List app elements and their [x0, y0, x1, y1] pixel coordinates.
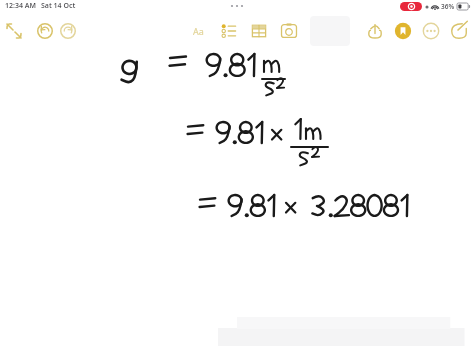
button[interactable]: Camera	[278, 20, 300, 42]
staticText: 12:34 AM	[5, 1, 36, 11]
button[interactable]: Compose	[448, 20, 470, 42]
button[interactable]: Collapse	[2, 19, 26, 43]
button[interactable]: Bullet list	[218, 20, 240, 42]
button[interactable]: Bookmark	[392, 20, 414, 42]
button[interactable]: Insert table	[248, 20, 270, 42]
button[interactable]: More options	[420, 20, 442, 42]
button[interactable]: Redo	[57, 20, 79, 42]
button[interactable]: Undo	[34, 20, 56, 42]
staticText: Aa	[193, 25, 204, 37]
staticText: 36%	[441, 2, 455, 11]
button[interactable]: Share	[364, 20, 386, 42]
button[interactable]: Aa	[186, 20, 210, 42]
staticText: Sat 14 Oct	[41, 1, 76, 11]
